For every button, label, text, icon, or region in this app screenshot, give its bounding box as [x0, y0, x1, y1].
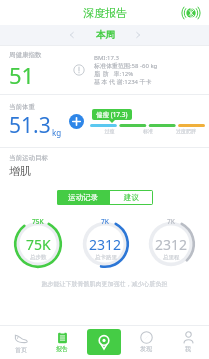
- button[interactable]: 报告: [41, 325, 83, 359]
- staticText: 过度肥胖: [167, 128, 205, 134]
- button[interactable]: Previous week: [62, 25, 82, 45]
- staticText: 发现: [140, 345, 152, 353]
- staticText: 周健康指数: [9, 51, 42, 59]
- staticText: kg: [52, 127, 62, 138]
- staticText: 偏瘦 (17.3): [96, 110, 128, 119]
- staticText: 7K: [101, 217, 109, 226]
- staticText: 我: [185, 345, 191, 353]
- staticText: 脂 肪 率:12%: [94, 70, 134, 78]
- button[interactable]: 75K: [9, 215, 67, 273]
- staticText: 过瘦: [90, 128, 129, 134]
- staticText: 标准体重范围:58 -60 kg: [94, 62, 158, 70]
- staticText: 跑步能让下肢骨骼肌肉更加强壮，减少心脏负担: [8, 280, 201, 288]
- button[interactable]: 周健康指数: [0, 46, 209, 94]
- staticText: 本周: [96, 29, 115, 41]
- staticText: 2312: [155, 235, 188, 254]
- staticText: 总里程: [163, 254, 180, 261]
- button[interactable]: Next week: [128, 25, 148, 45]
- staticText: 报告: [56, 345, 68, 353]
- button[interactable]: 建议: [110, 191, 152, 204]
- staticText: 当前运动目标: [9, 154, 48, 162]
- button[interactable]: Info: [72, 63, 86, 77]
- staticText: 基 本 代 谢:1234 千卡: [94, 78, 152, 86]
- staticText: BMI:17.3: [94, 54, 119, 62]
- staticText: 建议: [124, 193, 139, 202]
- staticText: 首页: [15, 346, 27, 354]
- staticText: 深度报告: [83, 6, 127, 20]
- button[interactable]: 2312: [142, 215, 200, 273]
- button[interactable]: 发现: [125, 325, 167, 359]
- button[interactable]: Bluetooth: [181, 3, 201, 23]
- button[interactable]: 我: [167, 325, 209, 359]
- staticText: 75K: [26, 235, 51, 254]
- staticText: 75K: [32, 217, 44, 226]
- button[interactable]: 当前运动目标: [0, 148, 209, 184]
- button[interactable]: 当前体重: [0, 95, 209, 147]
- staticText: 当前体重: [9, 103, 35, 111]
- staticText: 7K: [167, 217, 175, 226]
- button[interactable]: 首页: [0, 325, 41, 359]
- staticText: 总卡路里: [95, 254, 117, 261]
- staticText: 2312: [89, 235, 122, 254]
- staticText: 总步数: [30, 254, 47, 261]
- staticText: 51.3: [9, 111, 51, 140]
- button[interactable]: 运动记录: [57, 190, 109, 205]
- staticText: 标准: [129, 128, 167, 134]
- staticText: 51: [9, 60, 35, 90]
- button[interactable]: Add weight: [68, 113, 84, 129]
- staticText: 运动记录: [68, 193, 98, 202]
- button[interactable]: 2312: [76, 215, 134, 273]
- button[interactable]: Start tracking: [87, 329, 121, 355]
- staticText: 增肌: [9, 164, 31, 178]
